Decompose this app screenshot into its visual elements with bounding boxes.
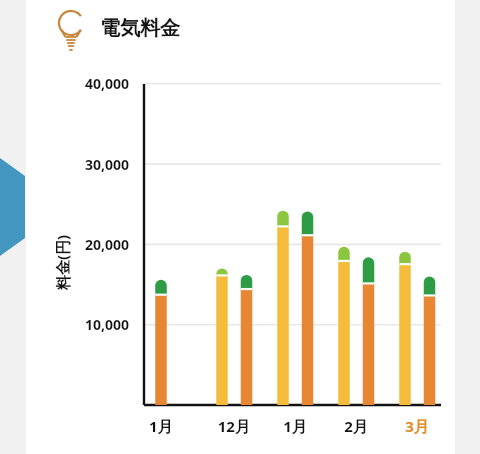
button[interactable]: 電気料金グラフ [0,0,480,454]
